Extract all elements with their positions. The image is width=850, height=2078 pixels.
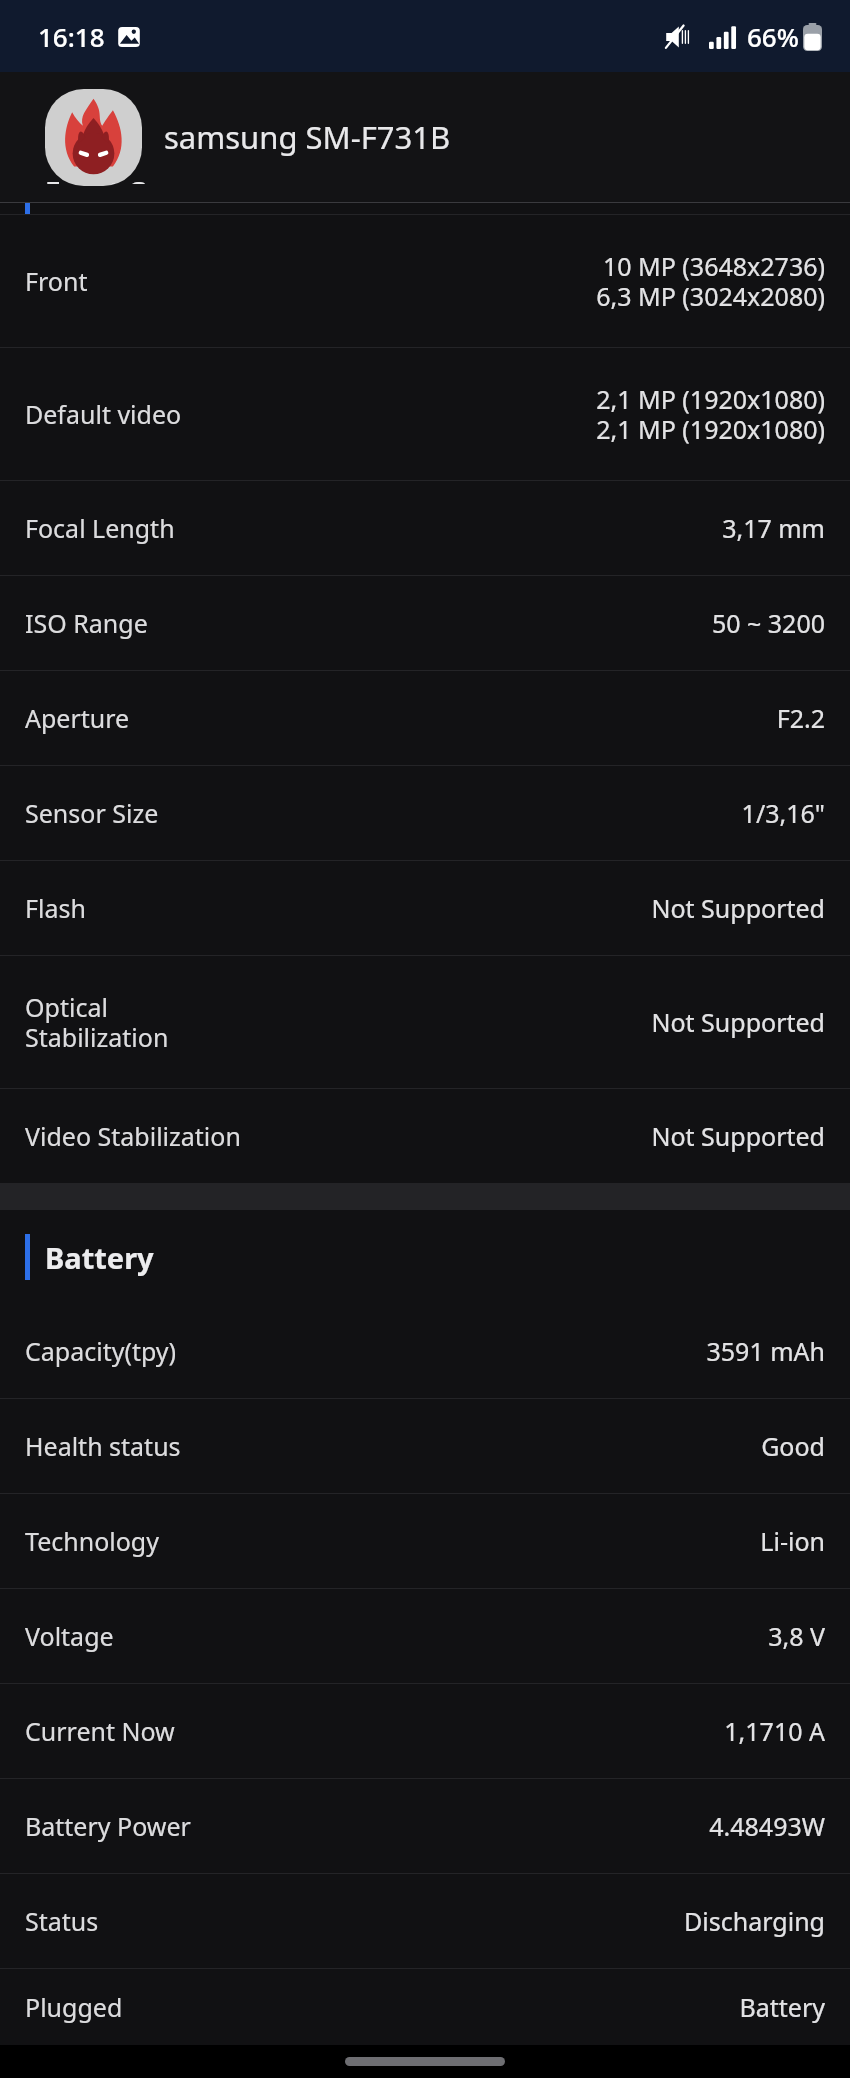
staticText: Front Camera (45, 173, 235, 184)
button[interactable]: Default video (0, 348, 850, 480)
staticText: Not Supported (651, 891, 825, 925)
button[interactable]: Aperture (0, 671, 850, 765)
staticText: 3,17 mm (722, 511, 825, 545)
staticText: Capacity(tpy) (25, 1334, 177, 1368)
button[interactable]: Current Now (0, 1684, 850, 1778)
staticText: Status (25, 1904, 99, 1938)
staticText: Voltage (25, 1619, 114, 1653)
staticText: 3591 mAh (706, 1334, 825, 1368)
staticText: 4.48493W (709, 1809, 825, 1843)
button[interactable]: Capacity(tpy) (0, 1304, 850, 1398)
button[interactable]: Voltage (0, 1589, 850, 1683)
staticText: 1,1710 A (724, 1714, 825, 1748)
staticText: Battery (739, 1990, 825, 2024)
button[interactable]: Video Stabilization (0, 1089, 850, 1183)
staticText: Discharging (684, 1904, 825, 1938)
other: Home gesture (345, 2057, 505, 2066)
staticText: Focal Length (25, 511, 175, 545)
staticText: Health status (25, 1429, 181, 1463)
staticText: Aperture (25, 701, 130, 735)
staticText: Optical Stabilization (25, 990, 169, 1055)
staticText: 66% (747, 19, 799, 54)
button[interactable]: Sensor Size (0, 766, 850, 860)
button[interactable]: Optical Stabilization (0, 956, 850, 1088)
staticText: 50 ~ 3200 (711, 606, 825, 640)
staticText: 16:18 (38, 19, 105, 54)
staticText: ISO Range (25, 606, 148, 640)
button[interactable]: Health status (0, 1399, 850, 1493)
button[interactable]: Technology (0, 1494, 850, 1588)
button[interactable]: Front (0, 215, 850, 347)
staticText: Front (25, 264, 88, 298)
button[interactable]: Flash (0, 861, 850, 955)
button[interactable]: Battery Power (0, 1779, 850, 1873)
staticText: Current Now (25, 1714, 175, 1748)
staticText: Video Stabilization (25, 1119, 241, 1153)
staticText: Li-ion (760, 1524, 825, 1558)
staticText: F2.2 (776, 701, 825, 735)
button[interactable]: Plugged (0, 1969, 850, 2045)
staticText: 1/3,16" (741, 796, 825, 830)
button[interactable]: ISO Range (0, 576, 850, 670)
staticText: Default video (25, 397, 182, 431)
staticText: Battery (45, 1238, 154, 1277)
staticText: Not Supported (651, 1119, 825, 1153)
staticText: Technology (25, 1524, 159, 1558)
staticText: 10 MP (3648x2736) 6,3 MP (3024x2080) (596, 249, 825, 314)
staticText: Battery Power (25, 1809, 191, 1843)
staticText: Flash (25, 891, 86, 925)
button[interactable]: Focal Length (0, 481, 850, 575)
staticText: Not Supported (651, 1005, 825, 1039)
button[interactable]: Status (0, 1874, 850, 1968)
staticText: Plugged (25, 1990, 123, 2024)
staticText: Good (761, 1429, 825, 1463)
staticText: 2,1 MP (1920x1080) 2,1 MP (1920x1080) (596, 382, 825, 447)
staticText: 3,8 V (768, 1619, 825, 1653)
staticText: Sensor Size (25, 796, 159, 830)
staticText: samsung SM-F731B (164, 116, 451, 158)
button[interactable]: samsung SM-F731B (0, 72, 850, 202)
